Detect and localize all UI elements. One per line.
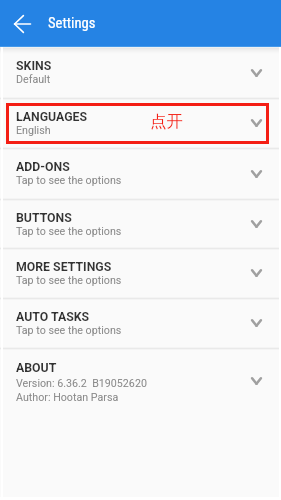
button[interactable]: Back bbox=[4, 6, 40, 42]
staticText: LANGUAGES bbox=[16, 110, 88, 124]
staticText: MORE SETTINGS bbox=[16, 260, 112, 274]
button[interactable]: MORE SETTINGS bbox=[0, 248, 281, 298]
staticText: Version: 6.36.2 B19052620 bbox=[16, 377, 147, 390]
staticText: ADD-ONS bbox=[16, 160, 70, 174]
staticText: BUTTONS bbox=[16, 211, 72, 225]
staticText: Settings bbox=[48, 14, 96, 31]
button[interactable]: SKINS bbox=[0, 47, 281, 98]
button[interactable]: ADD-ONS bbox=[0, 148, 281, 199]
button[interactable]: AUTO TASKS bbox=[0, 298, 281, 348]
button[interactable]: ABOUT bbox=[0, 349, 281, 409]
staticText: 点开 bbox=[150, 111, 183, 132]
staticText: Tap to see the options bbox=[16, 174, 122, 187]
staticText: Tap to see the options bbox=[16, 225, 122, 238]
staticText: SKINS bbox=[16, 59, 52, 73]
staticText: ABOUT bbox=[16, 361, 57, 375]
staticText: Tap to see the options bbox=[16, 274, 122, 287]
staticText: English bbox=[16, 124, 51, 137]
staticText: Author: Hootan Parsa bbox=[16, 391, 119, 404]
staticText: Tap to see the options bbox=[16, 324, 122, 337]
button[interactable]: BUTTONS bbox=[0, 199, 281, 248]
staticText: Default bbox=[16, 73, 51, 86]
staticText: AUTO TASKS bbox=[16, 310, 90, 324]
button[interactable]: LANGUAGES bbox=[0, 98, 281, 148]
